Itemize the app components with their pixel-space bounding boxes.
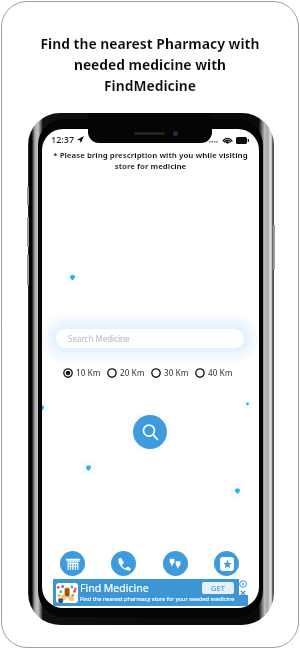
button[interactable]: Reviews: [163, 551, 188, 576]
staticText: Find the nearest Pharmacy with needed me…: [12, 34, 288, 95]
staticText: 40 Km: [208, 367, 233, 378]
staticText: * Please bring prescription with you whi…: [43, 150, 258, 171]
button[interactable]: Stores: [60, 551, 85, 576]
staticText: GET: [211, 583, 225, 593]
button[interactable]: 30 Km: [151, 367, 189, 378]
staticText: Find Medicine: [80, 581, 149, 595]
button[interactable]: 40 Km: [195, 367, 233, 378]
button[interactable]: GET: [202, 582, 234, 594]
staticText: Search Medicine: [68, 333, 130, 344]
button[interactable]: Search: [133, 415, 167, 449]
button[interactable]: Close ad: [239, 589, 247, 597]
staticText: Find the nearest pharmacy store for your…: [80, 595, 235, 603]
button[interactable]: Ad info: [239, 580, 247, 588]
staticText: 20 Km: [120, 367, 145, 378]
staticText: 12:37: [51, 133, 75, 145]
button[interactable]: Search Medicine: [56, 329, 244, 348]
button[interactable]: 20 Km: [107, 367, 145, 378]
staticText: 30 Km: [164, 367, 189, 378]
button[interactable]: Favorites: [214, 551, 239, 576]
button[interactable]: Call: [111, 551, 136, 576]
staticText: 10 Km: [76, 367, 101, 378]
button[interactable]: [53, 579, 239, 606]
button[interactable]: 10 Km: [63, 367, 101, 378]
